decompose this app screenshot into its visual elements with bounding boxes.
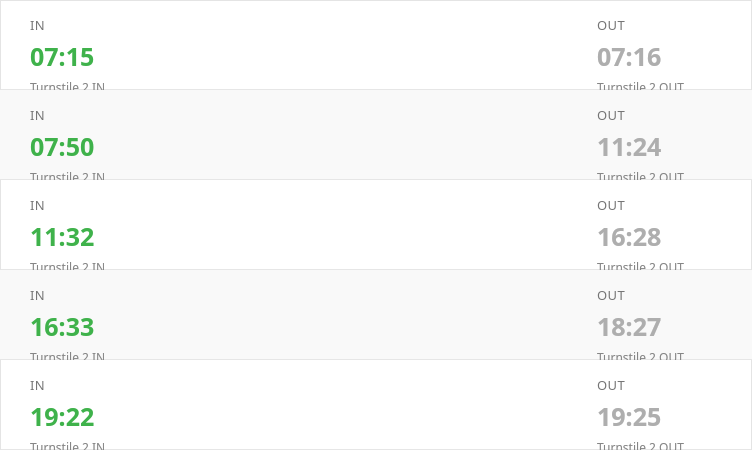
staticText: IN: [30, 286, 46, 304]
button[interactable]: IN: [0, 0, 752, 90]
button[interactable]: IN: [0, 270, 752, 360]
staticText: Turnstile 2 OUT: [597, 349, 684, 360]
staticText: Turnstile 2 OUT: [597, 169, 684, 180]
staticText: 19:25: [597, 399, 662, 433]
staticText: 11:32: [30, 219, 95, 253]
staticText: Turnstile 2 OUT: [597, 259, 684, 270]
staticText: IN: [30, 106, 46, 124]
staticText: 07:16: [597, 39, 662, 73]
staticText: 07:50: [30, 129, 95, 163]
staticText: Turnstile 2 IN: [30, 169, 106, 180]
staticText: 16:33: [30, 309, 95, 343]
staticText: OUT: [597, 376, 626, 394]
button[interactable]: IN: [0, 180, 752, 270]
staticText: Turnstile 2 OUT: [597, 79, 684, 90]
staticText: OUT: [597, 196, 626, 214]
staticText: Turnstile 2 IN: [30, 349, 106, 360]
staticText: 19:22: [30, 399, 95, 433]
staticText: 18:27: [597, 309, 662, 343]
staticText: IN: [30, 16, 46, 34]
staticText: Turnstile 2 IN: [30, 439, 106, 450]
staticText: Turnstile 2 IN: [30, 79, 106, 90]
staticText: Turnstile 2 IN: [30, 259, 106, 270]
staticText: OUT: [597, 106, 626, 124]
staticText: Turnstile 2 OUT: [597, 439, 684, 450]
staticText: IN: [30, 376, 46, 394]
button[interactable]: IN: [0, 360, 752, 450]
staticText: IN: [30, 196, 46, 214]
staticText: OUT: [597, 286, 626, 304]
staticText: 07:15: [30, 39, 95, 73]
staticText: 16:28: [597, 219, 662, 253]
staticText: 11:24: [597, 129, 662, 163]
button[interactable]: IN: [0, 90, 752, 180]
staticText: OUT: [597, 16, 626, 34]
